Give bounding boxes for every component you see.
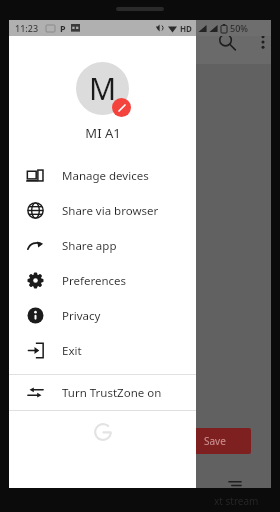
staticText: 11:23 [15,22,39,34]
staticText: Turn TrustZone on [62,385,162,401]
button[interactable]: Share app [9,228,196,263]
staticText: Privacy [62,308,101,324]
button[interactable]: Edit profile [112,98,131,117]
staticText: Save [204,434,226,448]
staticText: Exit [62,343,82,359]
button[interactable]: Search [215,30,239,54]
staticText: P [60,22,66,34]
staticText: HD [180,23,192,34]
button[interactable]: Share via browser [9,193,196,228]
button[interactable]: Preferences [9,263,196,298]
staticText: Manage devices [62,168,149,184]
button[interactable]: Save [179,428,251,454]
staticText: xt stream [214,494,259,508]
staticText: Share app [62,238,117,254]
button[interactable]: More options [251,30,275,54]
staticText: MI A1 [85,124,121,142]
staticText: 50% [230,22,248,34]
button[interactable]: Privacy [9,298,196,333]
staticText: Share via browser [62,203,159,219]
button[interactable]: Turn TrustZone on [9,375,196,410]
button[interactable]: M [9,36,196,152]
staticText: M [89,68,117,109]
staticText: Preferences [62,273,127,289]
button[interactable]: Manage devices [9,158,196,193]
button[interactable]: Exit [9,333,196,368]
